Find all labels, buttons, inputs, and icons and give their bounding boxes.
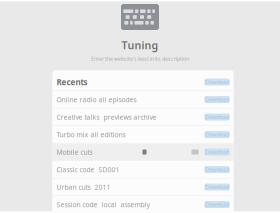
button[interactable]: Recents bbox=[52, 74, 233, 91]
staticText: Download bbox=[205, 201, 229, 208]
staticText: Download bbox=[205, 183, 229, 191]
button[interactable]: Classic code SD001 bbox=[52, 161, 233, 179]
staticText: Online radio all episodes bbox=[56, 95, 136, 104]
staticText: Download bbox=[205, 131, 229, 138]
staticText: Turbo mix all editions bbox=[56, 130, 125, 139]
staticText: Mobile cuts bbox=[56, 148, 92, 156]
button[interactable]: Download bbox=[204, 183, 229, 190]
button[interactable]: Download bbox=[204, 148, 229, 155]
button[interactable]: Mobile cuts bbox=[52, 144, 233, 161]
staticText: Download bbox=[205, 166, 229, 173]
staticText: Classic code SD001 bbox=[56, 165, 119, 174]
staticText: Download bbox=[205, 78, 229, 86]
staticText: Download bbox=[205, 113, 229, 121]
button[interactable]: Download bbox=[204, 96, 229, 103]
staticText: Urban cuts 2011 bbox=[56, 183, 110, 191]
staticText: Download bbox=[205, 96, 229, 103]
button[interactable]: Download bbox=[204, 131, 229, 138]
staticText: Download bbox=[205, 148, 229, 156]
button[interactable]: Creative talks previews archive bbox=[52, 109, 233, 126]
button[interactable]: Online radio all episodes bbox=[52, 91, 233, 109]
button[interactable]: Download bbox=[204, 113, 229, 120]
staticText: Recents bbox=[56, 77, 87, 87]
staticText: Enter the website's best in its descript… bbox=[91, 55, 189, 62]
button[interactable]: Download bbox=[204, 201, 229, 208]
staticText: Creative talks previews archive bbox=[56, 113, 156, 121]
button[interactable]: Turbo mix all editions bbox=[52, 126, 233, 144]
staticText: Tuning bbox=[121, 38, 158, 52]
button[interactable]: Download bbox=[204, 78, 229, 85]
button[interactable]: Download bbox=[204, 166, 229, 173]
button[interactable]: Urban cuts 2011 bbox=[52, 179, 233, 196]
button[interactable]: Session code local assembly bbox=[52, 196, 233, 213]
staticText: Session code local assembly bbox=[56, 200, 149, 209]
